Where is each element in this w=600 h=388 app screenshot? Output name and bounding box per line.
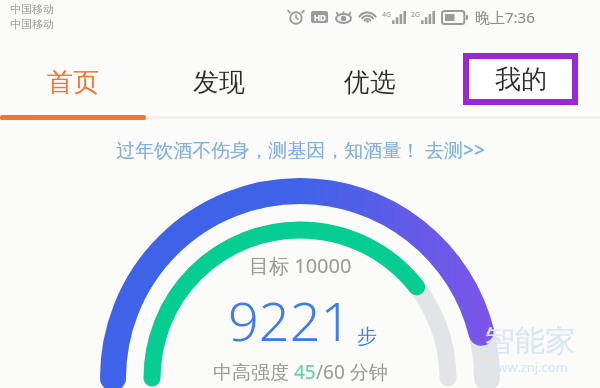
staticText: 目标 10000 [249,252,352,279]
button[interactable]: 优选 [295,46,445,118]
button[interactable]: 我的 [469,59,572,99]
staticText: 我的 [495,63,547,96]
staticText: 4G [382,10,392,20]
button[interactable]: 过年饮酒不伤身，测基因，知酒量！ 去测>> [0,130,600,170]
button[interactable]: 发现 [146,46,292,118]
staticText: 9221 [228,283,352,357]
staticText: 45 [294,359,316,385]
staticText: 2G [411,10,421,20]
staticText: 中国移动 [10,17,54,31]
staticText: /60 分钟 [316,359,388,385]
staticText: www.znj.com [487,358,568,376]
staticText: 首页 [47,66,99,99]
button[interactable]: 首页 [0,46,146,118]
staticText: 步 [357,324,377,349]
staticText: 智能家 [485,322,575,360]
staticText: HD [314,12,326,23]
staticText: 中国移动 [10,2,54,16]
staticText: 优选 [344,66,396,99]
staticText: 中高强度 [213,359,294,385]
staticText: 发现 [193,66,245,99]
staticText: 过年饮酒不伤身，测基因，知酒量！ 去测>> [116,137,485,163]
staticText: 晚上7:36 [475,7,535,27]
